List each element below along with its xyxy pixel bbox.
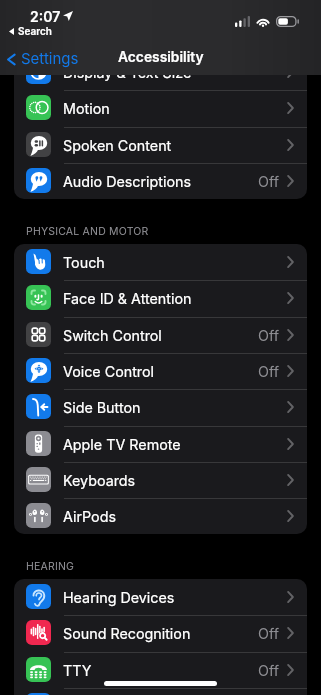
staticText: Spoken Content [63,137,172,154]
staticText: AirPods [63,508,116,525]
staticText: Side Button [63,399,141,416]
button[interactable]: AirPods [14,498,307,534]
button[interactable]: Face ID & Attention [14,280,307,316]
staticText: Apple TV Remote [63,436,181,453]
button[interactable]: Settings [7,50,79,68]
staticText: Motion [63,100,110,117]
staticText: Display & Text Size [63,64,192,81]
staticText: Settings [21,49,79,67]
staticText: Off [258,625,279,642]
staticText: Switch Control [63,327,162,344]
staticText: Search [18,25,52,37]
staticText: TTY [63,662,92,679]
staticText: Off [258,173,279,190]
staticText: Sound Recognition [63,625,191,642]
button[interactable]: TTY [14,652,307,688]
staticText: Accessibility [118,49,204,66]
button[interactable]: Keyboards [14,462,307,498]
button[interactable]: Hearing Devices [14,579,307,615]
staticText: 2:07 [30,8,61,25]
button[interactable]: Apple TV Remote [14,426,307,462]
staticText: HEARING [26,560,75,573]
button[interactable]: Voice Control [14,353,307,389]
button[interactable]: Audio Descriptions [14,163,307,199]
button[interactable]: Touch [14,244,307,280]
button[interactable]: Motion [14,90,307,126]
button[interactable]: Audio & Visual [14,688,307,695]
staticText: Hearing Devices [63,589,175,606]
staticText: Keyboards [63,472,136,489]
button[interactable]: Display & Text Size [14,54,307,90]
staticText: Off [258,327,279,344]
button[interactable]: Spoken Content [14,127,307,163]
button[interactable]: Sound Recognition [14,615,307,651]
staticText: Voice Control [63,363,155,380]
staticText: Touch [63,254,105,271]
staticText: Audio Descriptions [63,173,192,190]
staticText: Off [258,363,279,380]
staticText: PHYSICAL AND MOTOR [26,225,149,238]
button[interactable]: Switch Control [14,317,307,353]
staticText: Off [258,662,279,679]
staticText: Face ID & Attention [63,290,192,307]
button[interactable]: Side Button [14,389,307,425]
